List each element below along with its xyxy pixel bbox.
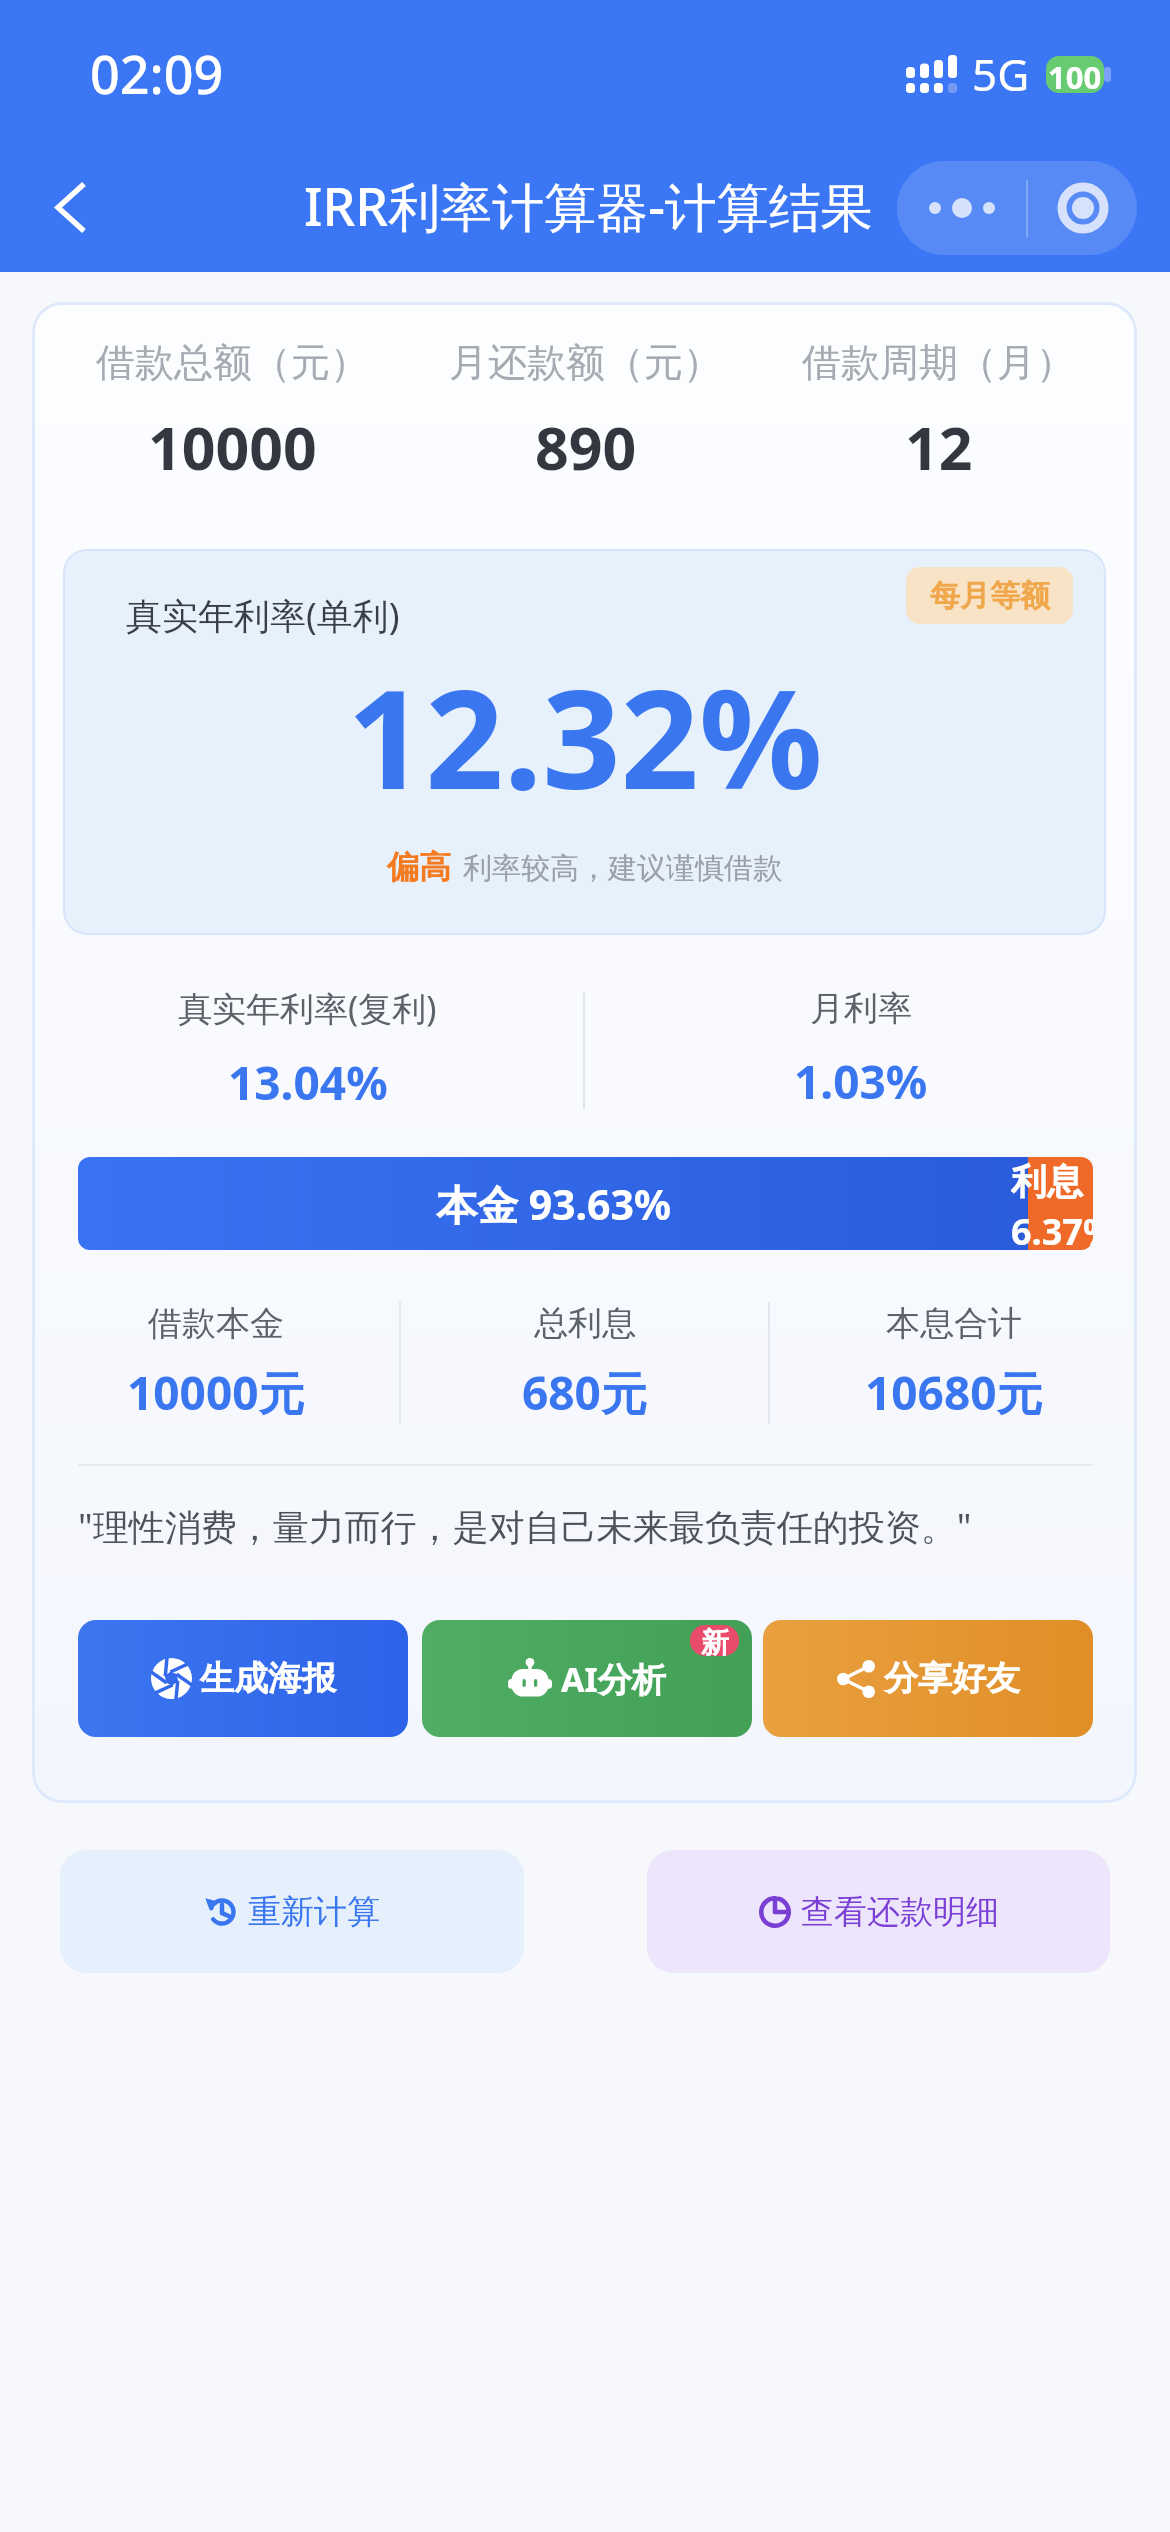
staticText: 02:09 [90, 38, 224, 109]
staticText: 分享好友 [884, 1657, 1020, 1700]
staticText: 100 [1048, 56, 1102, 93]
staticText: 查看还款明细 [801, 1891, 999, 1933]
button[interactable]: AI分析 [422, 1620, 752, 1737]
staticText: 借款总额（元） [96, 338, 369, 387]
staticText: 本金 93.63% [436, 1176, 671, 1232]
button[interactable]: Back [16, 152, 126, 262]
staticText: 每月等额 [930, 577, 1050, 615]
staticText: 10680元 [865, 1361, 1043, 1424]
staticText: 借款本金 [148, 1302, 284, 1345]
staticText: 月还款额（元） [449, 338, 722, 387]
staticText: 12.32% [347, 643, 823, 830]
staticText: 13.04% [228, 1051, 388, 1114]
button[interactable]: More [897, 161, 1026, 255]
button[interactable]: 分享好友 [763, 1620, 1093, 1737]
staticText: 1.03% [794, 1050, 928, 1113]
staticText: 680元 [522, 1361, 647, 1424]
staticText: 10000元 [127, 1361, 305, 1424]
staticText: 新 [701, 1625, 729, 1656]
staticText: IRR利率计算器-计算结果 [304, 170, 873, 241]
button[interactable]: 生成海报 [78, 1620, 408, 1737]
staticText: 890 [535, 407, 637, 487]
staticText: 总利息 [534, 1302, 636, 1345]
staticText: 利息 6.37% [1011, 1159, 1093, 1250]
staticText: 5G [972, 44, 1030, 104]
staticText: 重新计算 [248, 1891, 380, 1933]
button[interactable]: 查看还款明细 [647, 1850, 1110, 1973]
button[interactable]: 重新计算 [60, 1850, 524, 1973]
staticText: "理性消费，量力而行，是对自己未来最负责任的投资。" [78, 1502, 972, 1551]
staticText: 真实年利率(单利) [126, 591, 400, 640]
staticText: 10000 [148, 407, 317, 487]
staticText: 利率较高，建议谨慎借款 [463, 850, 782, 887]
staticText: 借款周期（月） [802, 338, 1075, 387]
staticText: 本息合计 [886, 1302, 1022, 1345]
staticText: AI分析 [561, 1656, 666, 1702]
staticText: 月利率 [810, 987, 912, 1030]
staticText: 真实年利率(复利) [178, 985, 437, 1031]
button[interactable]: Menu [1028, 161, 1137, 255]
staticText: 偏高 [387, 847, 451, 887]
staticText: 生成海报 [200, 1657, 336, 1700]
staticText: 12 [905, 407, 973, 487]
